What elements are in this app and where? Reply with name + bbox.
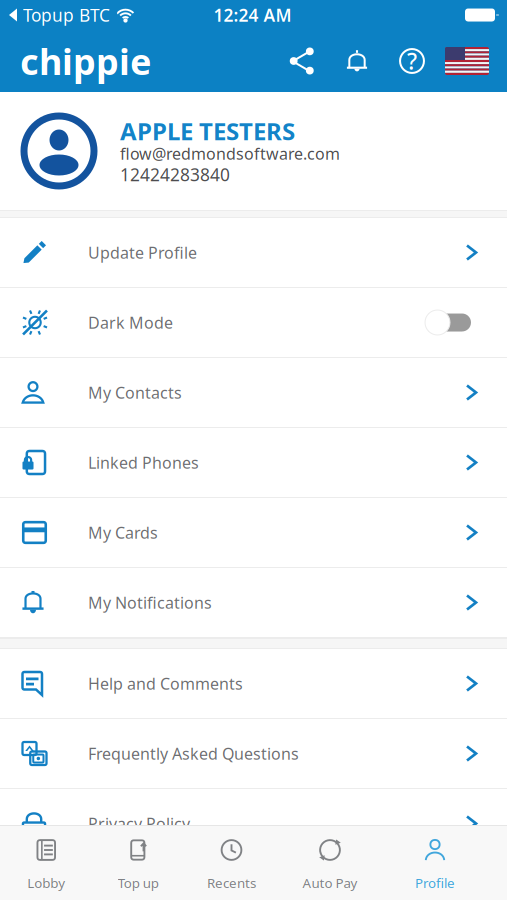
- staticText: flow@redmondsoftware.com: [120, 143, 340, 164]
- button[interactable]: Frequently Asked Questions: [0, 719, 507, 789]
- staticText: Privacy Policy: [88, 813, 190, 834]
- staticText: My Notifications: [88, 592, 212, 613]
- staticText: Frequently Asked Questions: [88, 743, 299, 764]
- button[interactable]: Dark Mode: [0, 288, 507, 358]
- staticText: Topup BTC: [23, 3, 110, 26]
- staticText: Help and Comments: [88, 673, 243, 694]
- button[interactable]: Top up: [92, 826, 184, 900]
- staticText: My Contacts: [88, 382, 182, 403]
- button[interactable]: Update Profile: [0, 218, 507, 288]
- staticText: Dark Mode: [88, 312, 173, 333]
- button[interactable]: My Contacts: [0, 358, 507, 428]
- staticText: My Cards: [88, 522, 158, 543]
- staticText: 12:24 AM: [213, 3, 291, 26]
- staticText: chippie: [20, 37, 151, 85]
- staticText: Recents: [207, 874, 256, 892]
- button[interactable]: Profile: [381, 826, 489, 900]
- button[interactable]: Notifications: [337, 40, 377, 82]
- button[interactable]: Language: [445, 47, 489, 75]
- button[interactable]: My Notifications: [0, 568, 507, 638]
- staticText: APPLE TESTERS: [120, 115, 295, 147]
- button[interactable]: Help: [391, 40, 433, 82]
- button[interactable]: Lobby: [0, 826, 92, 900]
- button[interactable]: Privacy Policy: [0, 789, 507, 859]
- button[interactable]: Recents: [184, 826, 279, 900]
- staticText: Linked Phones: [88, 452, 199, 473]
- button[interactable]: Share: [281, 40, 323, 82]
- staticText: Profile: [415, 874, 455, 892]
- staticText: 12424283840: [120, 163, 230, 186]
- staticText: Update Profile: [88, 242, 197, 263]
- staticText: ?: [407, 46, 417, 76]
- button[interactable]: My Cards: [0, 498, 507, 568]
- staticText: Top up: [118, 874, 159, 892]
- staticText: Lobby: [27, 874, 65, 892]
- staticText: Auto Pay: [302, 874, 357, 892]
- button[interactable]: Auto Pay: [279, 826, 381, 900]
- button[interactable]: Help and Comments: [0, 649, 507, 719]
- button[interactable]: Linked Phones: [0, 428, 507, 498]
